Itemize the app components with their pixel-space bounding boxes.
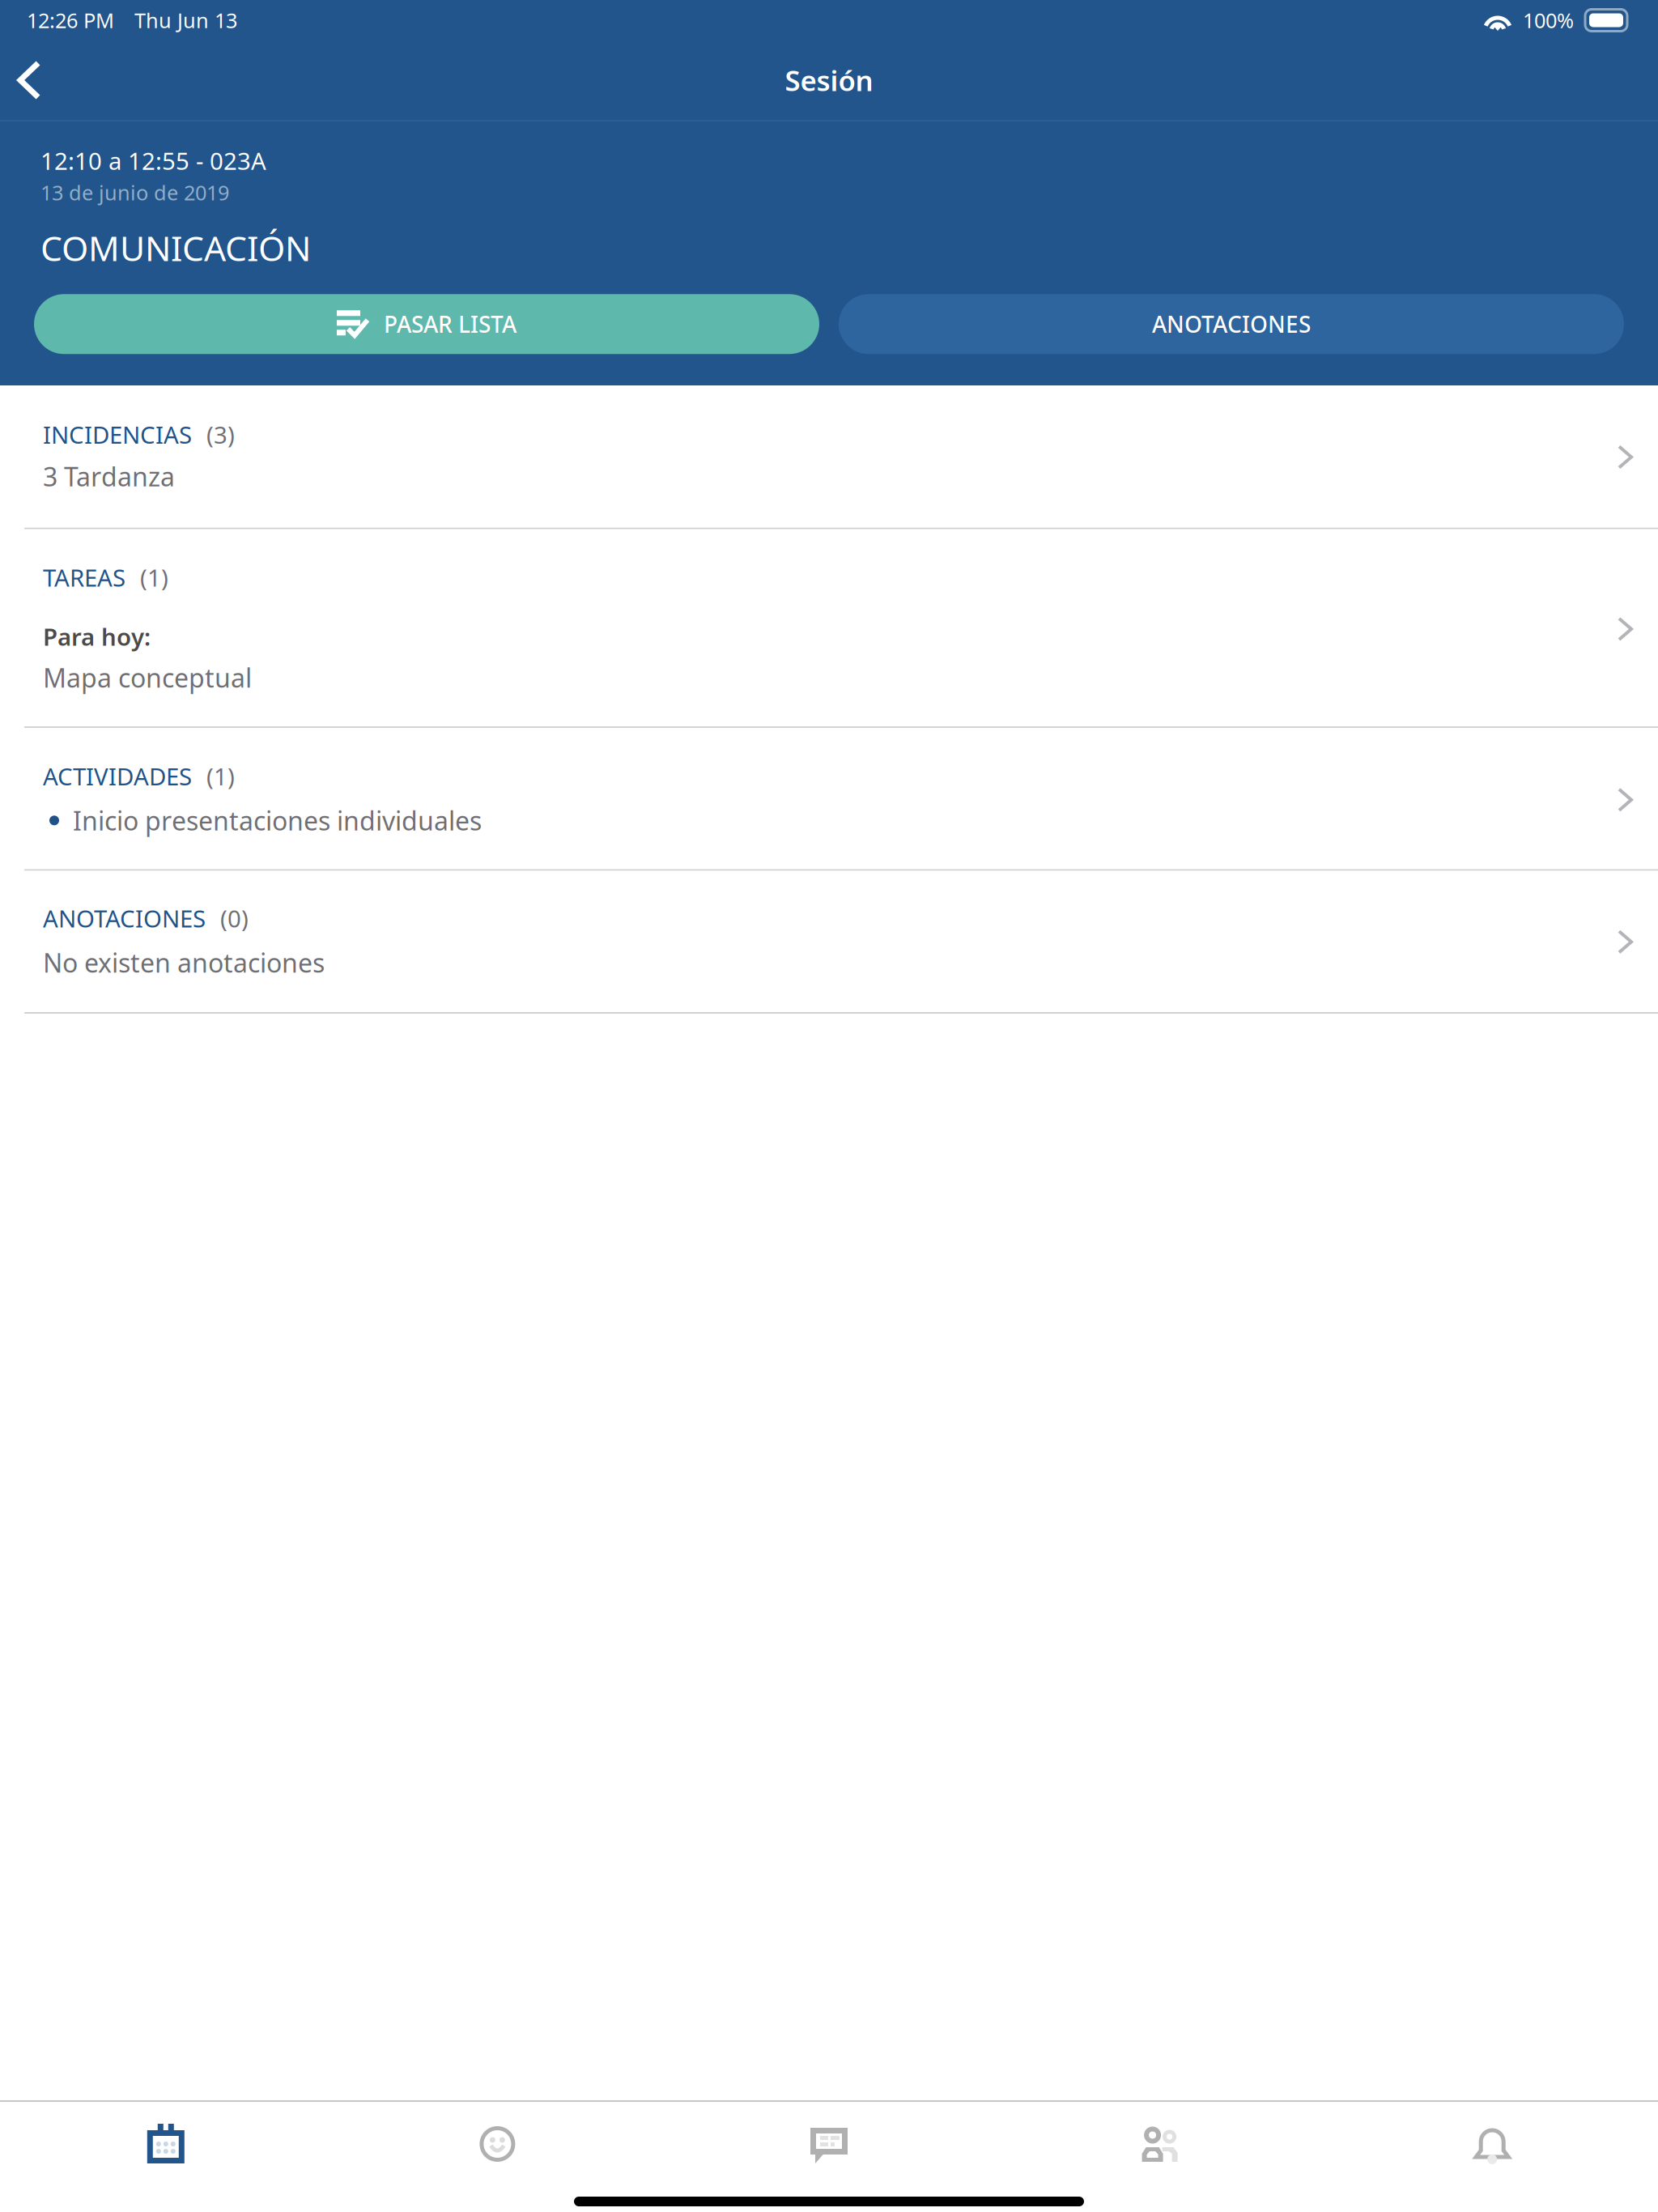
- button[interactable]: ACTIVIDADES: [0, 728, 1658, 871]
- staticText: 13 de junio de 2019: [40, 179, 229, 206]
- staticText: 12:10 a 12:55 - 023A: [40, 145, 266, 177]
- staticText: (0): [220, 902, 249, 934]
- staticText: Thu Jun 13: [134, 7, 237, 34]
- staticText: COMUNICACIÓN: [40, 225, 311, 271]
- staticText: TAREAS: [43, 562, 125, 593]
- button[interactable]: Agenda: [0, 2102, 332, 2191]
- button[interactable]: Mensajes: [663, 2102, 995, 2191]
- staticText: 12:26 PM: [27, 7, 114, 34]
- button[interactable]: Alumnos: [995, 2102, 1326, 2191]
- staticText: Mapa conceptual: [43, 660, 252, 695]
- staticText: (1): [206, 760, 235, 792]
- button[interactable]: PASAR LISTA: [34, 294, 819, 354]
- staticText: ANOTACIONES: [43, 902, 206, 934]
- staticText: No existen anotaciones: [43, 945, 325, 980]
- button[interactable]: ANOTACIONES: [839, 294, 1624, 354]
- button[interactable]: Avisos: [1326, 2102, 1658, 2191]
- staticText: PASAR LISTA: [384, 309, 517, 339]
- staticText: 100%: [1523, 7, 1574, 34]
- staticText: (1): [140, 562, 168, 593]
- staticText: ANOTACIONES: [1152, 309, 1311, 339]
- staticText: Para hoy:: [43, 621, 151, 652]
- staticText: INCIDENCIAS: [43, 419, 192, 450]
- staticText: ACTIVIDADES: [43, 760, 192, 792]
- button[interactable]: TAREAS: [0, 529, 1658, 728]
- button[interactable]: Evaluación: [332, 2102, 663, 2191]
- staticText: (3): [206, 419, 235, 450]
- button[interactable]: Back: [0, 41, 66, 119]
- button[interactable]: ANOTACIONES: [0, 871, 1658, 1014]
- button[interactable]: INCIDENCIAS: [0, 386, 1658, 529]
- staticText: 3 Tardanza: [43, 459, 175, 494]
- staticText: Sesión: [785, 62, 873, 99]
- staticText: Inicio presentaciones individuales: [73, 803, 482, 838]
